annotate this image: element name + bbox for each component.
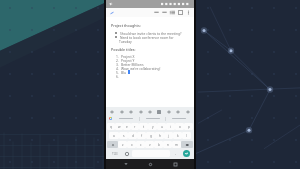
button[interactable]: Highlight (155, 108, 163, 115)
staticText: ?123 (112, 152, 118, 156)
button[interactable]: Suggestion 1 (113, 115, 139, 122)
staticText: q (110, 125, 112, 129)
button[interactable]: Undo (109, 10, 114, 15)
staticText: c (140, 143, 142, 147)
button[interactable]: Align (137, 108, 145, 115)
staticText: Wow, we're collaborating! (121, 66, 161, 70)
staticText: Project X (121, 54, 135, 58)
staticText: j (168, 134, 169, 138)
button[interactable]: Format (176, 8, 184, 17)
staticText: l (186, 134, 187, 138)
button[interactable]: e (123, 123, 131, 130)
button[interactable]: Recents (170, 159, 180, 169)
staticText: m (175, 143, 178, 147)
button[interactable]: m (172, 141, 181, 148)
button[interactable]: f (137, 132, 146, 139)
button[interactable]: Suggestion 3 (166, 115, 191, 122)
button[interactable]: v (145, 141, 154, 148)
button[interactable]: Suggestion 2 (140, 115, 165, 122)
staticText: 1. (116, 54, 119, 58)
button[interactable]: t (139, 123, 148, 130)
staticText: y (152, 125, 154, 129)
button[interactable]: Italic (118, 108, 126, 115)
button[interactable]: x (127, 141, 136, 148)
staticText: f (141, 134, 143, 138)
staticText: d (132, 134, 134, 138)
button[interactable]: List (168, 8, 176, 17)
staticText: i (170, 125, 171, 129)
staticText: v (149, 143, 151, 147)
staticText: x (131, 143, 133, 147)
button[interactable]: h (155, 132, 164, 139)
staticText: . (175, 151, 176, 156)
button[interactable]: Bold (152, 8, 160, 17)
staticText: 6. (116, 74, 119, 78)
button[interactable]: r (131, 123, 139, 130)
staticText: t (143, 125, 145, 129)
button[interactable]: Underline (127, 108, 135, 115)
staticText: u (161, 125, 163, 129)
staticText: k (177, 134, 179, 138)
staticText: Need to book conference room for (120, 35, 174, 39)
button[interactable]: l (182, 132, 191, 139)
button[interactable]: p (184, 123, 193, 130)
button[interactable]: n (163, 141, 172, 148)
button[interactable]: Home (145, 159, 155, 169)
staticText: g (150, 134, 152, 138)
staticText: Better Millions (121, 62, 144, 66)
button[interactable]: Undo (165, 108, 173, 115)
staticText: o (179, 125, 181, 129)
staticText: r (134, 125, 136, 129)
staticText: Project thoughts: (111, 23, 141, 28)
button[interactable]: Backspace (181, 141, 193, 148)
button[interactable]: ?123 (107, 150, 122, 157)
button[interactable]: g (146, 132, 155, 139)
button[interactable]: i (166, 123, 175, 130)
button[interactable]: s (119, 132, 128, 139)
button[interactable]: w (115, 123, 123, 130)
staticText: e (126, 125, 128, 129)
staticText: Project Y (121, 58, 135, 62)
staticText: Blu (121, 70, 127, 74)
button[interactable]: Google (108, 116, 113, 121)
staticText: 5. (116, 70, 119, 74)
button[interactable]: Bold (108, 108, 116, 115)
button[interactable]: y (148, 123, 157, 130)
staticText: p (188, 125, 190, 129)
button[interactable]: Back (121, 159, 131, 169)
staticText: n (167, 143, 169, 147)
button[interactable]: a (109, 132, 119, 139)
button[interactable]: o (175, 123, 184, 130)
staticText: z (122, 143, 124, 147)
staticText: Should we invite clients to the meeting? (120, 31, 182, 35)
button[interactable]: q (107, 123, 115, 130)
button[interactable]: Shift (107, 141, 118, 148)
button[interactable]: Color (146, 108, 154, 115)
button[interactable]: d (128, 132, 137, 139)
staticText: Possible titles: (111, 47, 136, 52)
button[interactable]: k (173, 132, 182, 139)
button[interactable]: . (171, 150, 180, 157)
button[interactable]: Redo (174, 108, 182, 115)
staticText: w (118, 125, 121, 129)
button[interactable]: z (118, 141, 127, 148)
button[interactable]: Italic (160, 8, 168, 17)
button[interactable]: Emoji (122, 150, 131, 157)
staticText: h (159, 134, 161, 138)
button[interactable]: Enter (183, 150, 190, 157)
staticText: 2. (116, 58, 119, 62)
staticText: b (158, 143, 160, 147)
staticText: 4. (116, 66, 119, 70)
button[interactable]: c (136, 141, 145, 148)
button[interactable]: u (157, 123, 166, 130)
staticText: s (123, 134, 125, 138)
staticText: a (113, 134, 115, 138)
button[interactable]: More (184, 108, 192, 115)
button[interactable]: j (164, 132, 173, 139)
staticText: Tuesday (119, 39, 132, 43)
button[interactable]: More (184, 8, 192, 17)
button[interactable]: b (154, 141, 163, 148)
staticText: 3. (116, 62, 119, 66)
